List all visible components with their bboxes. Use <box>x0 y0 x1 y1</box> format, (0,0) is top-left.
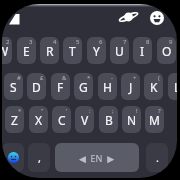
button[interactable]: Emoji <box>2 143 24 172</box>
staticText: - <box>111 74 113 81</box>
staticText: 5 <box>76 38 80 45</box>
staticText: , <box>38 150 41 165</box>
button[interactable]: V <box>75 106 94 133</box>
staticText: * <box>87 74 91 81</box>
staticText: : <box>89 107 91 114</box>
button[interactable]: L <box>168 73 177 100</box>
button[interactable]: Emoji keyboard <box>150 11 164 25</box>
staticText: V <box>81 112 89 128</box>
button[interactable]: B <box>99 106 118 133</box>
staticText: F <box>57 79 64 95</box>
staticText: C <box>58 112 66 128</box>
button[interactable]: O <box>157 37 176 64</box>
staticText: E <box>23 43 30 59</box>
button[interactable]: N <box>122 106 141 133</box>
button[interactable]: M <box>145 106 164 133</box>
button[interactable]: X <box>29 106 48 133</box>
staticText: 7 <box>123 38 127 45</box>
button[interactable]: Language <box>119 11 137 24</box>
staticText: D <box>32 79 41 95</box>
staticText: R <box>46 43 54 59</box>
staticText: 8 <box>146 38 150 45</box>
button[interactable]: , <box>28 143 50 172</box>
button[interactable]: ◀ EN ▶ <box>55 143 139 172</box>
button[interactable]: F <box>51 73 70 100</box>
staticText: B <box>105 112 113 128</box>
button[interactable]: K <box>144 73 163 100</box>
staticText: 3 <box>29 38 33 45</box>
staticText: " <box>41 107 44 114</box>
staticText: * <box>18 107 22 114</box>
button[interactable]: I <box>133 37 152 64</box>
staticText: 6 <box>99 38 103 45</box>
button[interactable]: . <box>146 143 168 172</box>
button[interactable]: G <box>74 73 93 100</box>
button[interactable]: Theme <box>9 14 20 25</box>
button[interactable]: Y <box>87 37 106 64</box>
button[interactable]: S <box>4 73 23 100</box>
staticText: ? <box>158 107 161 114</box>
button[interactable]: U <box>110 37 129 64</box>
staticText: Z <box>11 112 18 128</box>
staticText: & <box>62 74 67 81</box>
staticText: ' <box>66 107 68 114</box>
staticText: L <box>174 79 177 95</box>
staticText: £ <box>40 74 44 81</box>
staticText: I <box>140 43 145 59</box>
button[interactable]: R <box>40 37 59 64</box>
staticText: 2 <box>6 38 10 45</box>
button[interactable]: T <box>63 37 82 64</box>
button[interactable]: E <box>17 37 36 64</box>
button[interactable]: D <box>27 73 46 100</box>
button[interactable]: H <box>98 73 117 100</box>
staticText: ! <box>136 107 138 114</box>
staticText: J <box>129 79 133 95</box>
staticText: S <box>10 79 17 95</box>
staticText: O <box>162 43 172 59</box>
staticText: Y <box>93 43 100 59</box>
button[interactable]: W <box>2 37 12 64</box>
staticText: + <box>133 74 137 81</box>
staticText: G <box>79 79 88 95</box>
staticText: ; <box>112 107 114 114</box>
staticText: # <box>17 74 21 81</box>
staticText: ( <box>158 74 160 81</box>
staticText: W <box>2 43 9 59</box>
staticText: 4 <box>53 38 57 45</box>
staticText: K <box>150 79 158 95</box>
button[interactable]: J <box>121 73 140 100</box>
button[interactable]: C <box>52 106 71 133</box>
staticText: T <box>69 43 76 59</box>
staticText: U <box>115 43 124 59</box>
staticText: X <box>35 112 43 128</box>
staticText: N <box>127 112 137 128</box>
staticText: M <box>149 112 160 128</box>
staticText: 9 <box>169 38 173 45</box>
staticText: . <box>156 150 159 165</box>
button[interactable]: Z <box>5 106 24 133</box>
staticText: H <box>103 79 112 95</box>
staticText: ◀ EN ▶ <box>79 152 115 164</box>
